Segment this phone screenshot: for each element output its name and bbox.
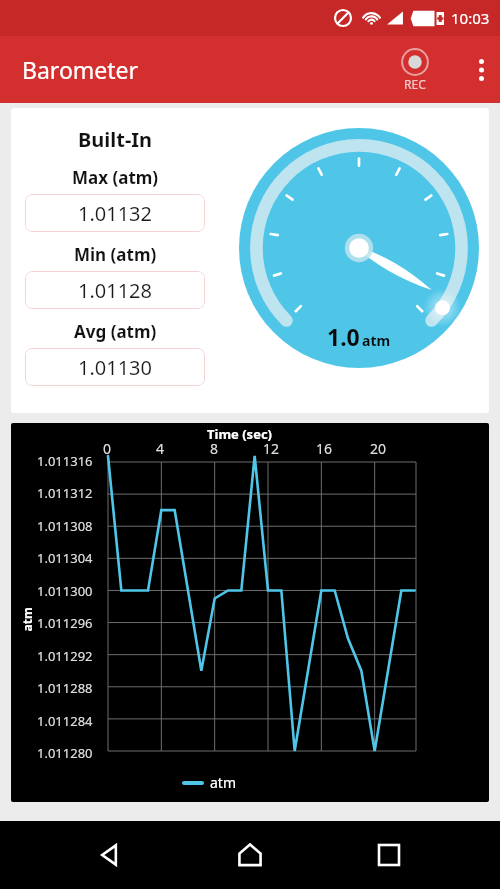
- staticText: 1.011316: [37, 452, 93, 470]
- staticText: REC: [404, 76, 426, 92]
- staticText: 1.011288: [37, 679, 93, 697]
- staticText: atm: [18, 606, 34, 631]
- staticText: 1.01130: [78, 354, 152, 381]
- staticText: Time (sec): [207, 425, 273, 443]
- staticText: 1.01128: [78, 277, 152, 304]
- button[interactable]: 1.01130: [25, 348, 205, 386]
- staticText: 12: [263, 439, 280, 458]
- staticText: 20: [370, 439, 387, 458]
- button[interactable]: Back: [83, 827, 139, 883]
- button[interactable]: Recent apps: [361, 827, 417, 883]
- staticText: 1.01132: [78, 200, 152, 227]
- button[interactable]: 1.01128: [25, 271, 205, 309]
- staticText: 1.011304: [37, 549, 93, 567]
- staticText: Min (atm): [74, 243, 157, 266]
- staticText: 4: [156, 439, 165, 458]
- staticText: Barometer: [22, 54, 139, 85]
- staticText: 1: [445, 329, 452, 344]
- staticText: 0: [266, 329, 273, 344]
- staticText: 1.011312: [37, 484, 93, 502]
- button[interactable]: 1.01132: [25, 194, 205, 232]
- staticText: Built-In: [78, 126, 153, 153]
- staticText: atm: [210, 773, 236, 792]
- staticText: 10:03: [451, 8, 490, 28]
- button[interactable]: More options: [463, 47, 500, 93]
- staticText: 1.011300: [37, 582, 93, 600]
- staticText: Avg (atm): [74, 320, 157, 343]
- button[interactable]: 1.011316: [11, 423, 489, 802]
- staticText: atm: [362, 331, 391, 350]
- staticText: 1.0: [327, 321, 360, 352]
- staticText: 16: [316, 439, 333, 458]
- staticText: 1.011296: [37, 614, 93, 632]
- staticText: 0: [103, 439, 112, 458]
- staticText: Max (atm): [72, 166, 159, 189]
- button[interactable]: Record: [395, 46, 435, 94]
- staticText: 1.011280: [37, 744, 93, 762]
- staticText: 1.011292: [37, 647, 93, 665]
- staticText: 1.011284: [37, 712, 93, 730]
- staticText: 1.011308: [37, 517, 93, 535]
- button[interactable]: Home: [222, 827, 278, 883]
- staticText: 8: [210, 439, 219, 458]
